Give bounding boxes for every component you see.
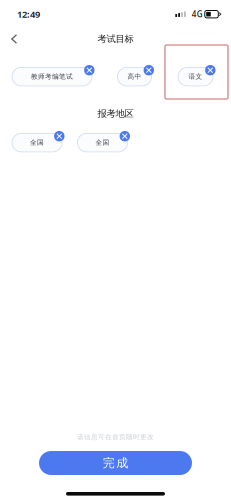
button[interactable]: 全国 bbox=[12, 131, 64, 152]
button[interactable]: 全国 bbox=[77, 131, 130, 152]
staticText: 教师考编笔试 bbox=[31, 73, 73, 81]
staticText: 该信息可在首页随时更改 bbox=[77, 433, 154, 441]
button[interactable]: 语文 bbox=[178, 65, 215, 86]
button[interactable]: 教师考编笔试 bbox=[12, 65, 94, 86]
staticText: 语文 bbox=[188, 73, 202, 81]
button[interactable]: Back bbox=[0, 30, 29, 48]
staticText: 全国 bbox=[30, 139, 44, 147]
staticText: 报考地区 bbox=[97, 108, 133, 119]
staticText: 完成 bbox=[103, 456, 128, 470]
button[interactable]: 完成 bbox=[39, 451, 192, 475]
staticText: 高中 bbox=[127, 73, 141, 81]
staticText: 4G bbox=[192, 9, 203, 19]
button[interactable]: 高中 bbox=[117, 65, 154, 86]
staticText: 全国 bbox=[95, 139, 109, 147]
staticText: 12:49 bbox=[17, 8, 40, 20]
staticText: 考试目标 bbox=[97, 33, 133, 45]
